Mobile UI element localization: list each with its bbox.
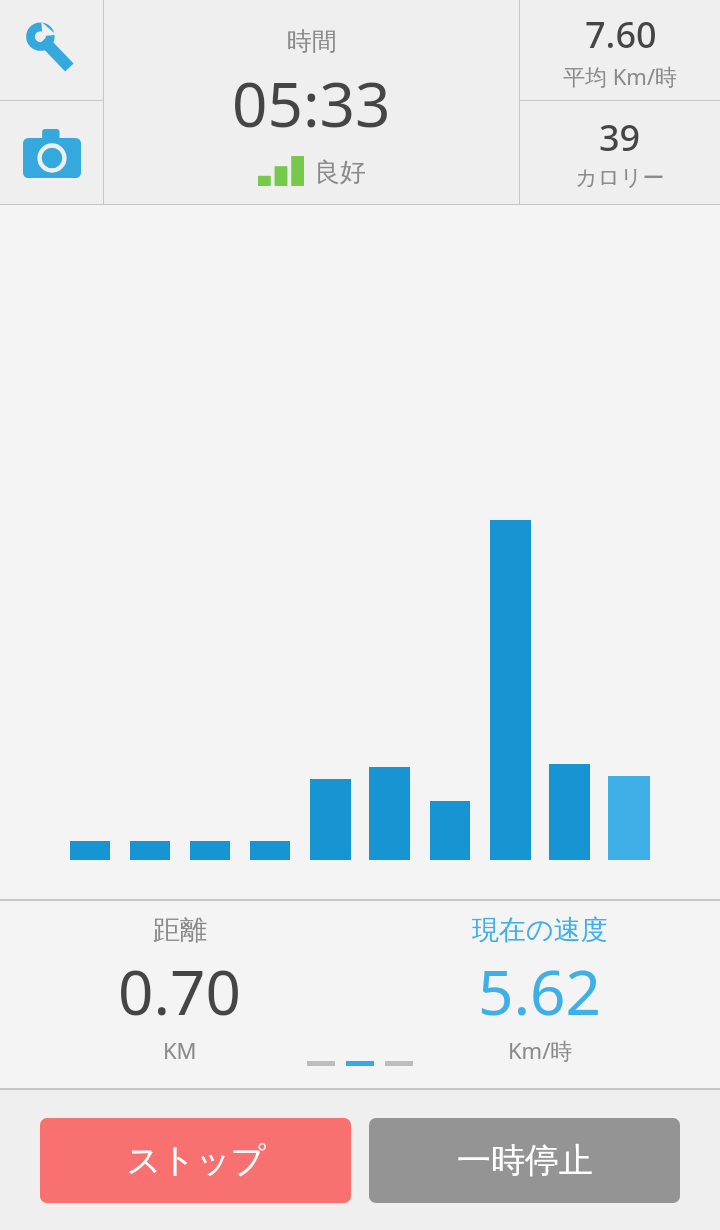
- button[interactable]: 距離: [0, 901, 360, 1088]
- staticText: 0.70: [118, 949, 242, 1033]
- staticText: 距離: [153, 913, 207, 947]
- staticText: 05:33: [232, 61, 391, 145]
- staticText: Km/時: [508, 1035, 573, 1065]
- staticText: 7.60: [585, 10, 657, 59]
- staticText: カロリー: [575, 164, 665, 192]
- staticText: 良好: [314, 156, 366, 189]
- staticText: 時間: [287, 26, 337, 57]
- button[interactable]: [0, 205, 720, 899]
- button[interactable]: Settings: [0, 0, 103, 100]
- button[interactable]: 39: [520, 101, 720, 204]
- staticText: 一時停止: [457, 1139, 593, 1182]
- button[interactable]: 時間: [104, 0, 519, 204]
- staticText: 現在の速度: [472, 913, 608, 947]
- staticText: ストップ: [126, 1139, 266, 1182]
- staticText: 5.62: [478, 949, 602, 1033]
- button[interactable]: 7.60: [520, 0, 720, 100]
- staticText: 平均 Km/時: [563, 61, 678, 91]
- button[interactable]: ストップ: [40, 1118, 351, 1203]
- staticText: 39: [599, 113, 641, 162]
- button[interactable]: 一時停止: [369, 1118, 680, 1203]
- staticText: KM: [163, 1035, 197, 1065]
- button[interactable]: Camera: [0, 101, 103, 204]
- button[interactable]: 現在の速度: [360, 901, 720, 1088]
